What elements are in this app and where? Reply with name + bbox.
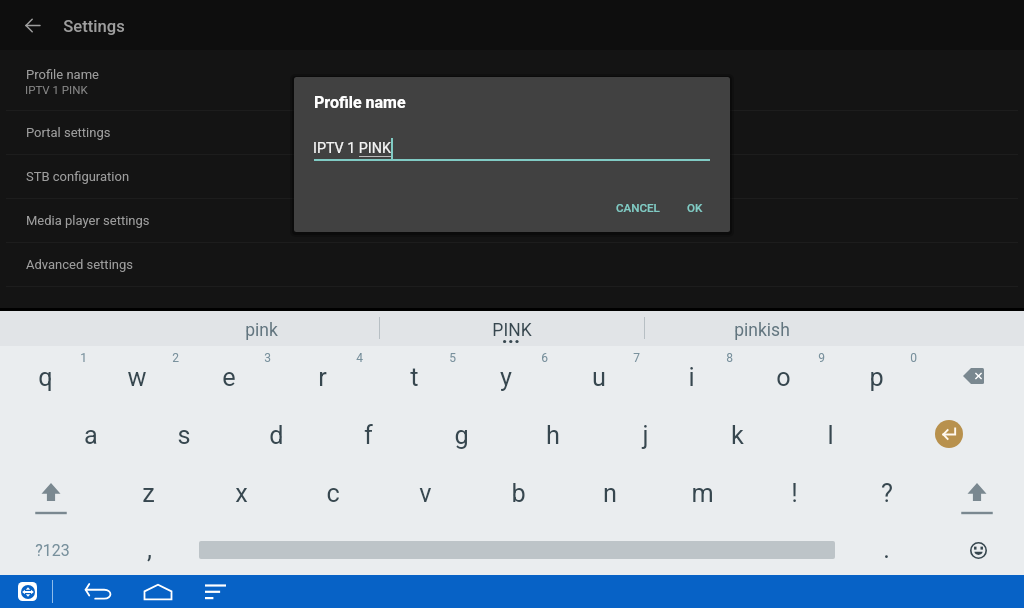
button[interactable]: [380, 310, 644, 346]
staticText: 6: [541, 351, 548, 365]
staticText: OK: [687, 201, 703, 215]
staticText: i: [688, 363, 695, 393]
button[interactable]: Back: [75, 575, 121, 608]
staticText: v: [419, 479, 432, 509]
button[interactable]: k: [691, 408, 783, 465]
staticText: !: [791, 479, 798, 509]
button[interactable]: c: [287, 466, 379, 523]
staticText: s: [177, 421, 191, 451]
button[interactable]: i: [645, 350, 737, 407]
button[interactable]: Recent apps: [190, 575, 240, 608]
staticText: k: [731, 421, 744, 451]
button[interactable]: [0, 310, 379, 346]
staticText: x: [235, 479, 248, 509]
staticText: Portal settings: [26, 125, 111, 140]
staticText: pink: [245, 320, 278, 341]
staticText: IPTV 1 PINK: [313, 140, 391, 157]
staticText: r: [318, 363, 327, 393]
button[interactable]: w: [91, 350, 183, 407]
button[interactable]: e: [183, 350, 275, 407]
button[interactable]: [0, 198, 1024, 242]
button[interactable]: Navigate up: [11, 0, 55, 50]
staticText: PINK: [492, 320, 532, 341]
staticText: u: [592, 363, 606, 393]
button[interactable]: Backspace: [927, 347, 1019, 404]
button[interactable]: v: [379, 466, 471, 523]
staticText: 3: [264, 351, 271, 365]
button[interactable]: r: [276, 350, 368, 407]
staticText: j: [642, 421, 649, 451]
staticText: 2: [172, 351, 179, 365]
button[interactable]: Emoji: [932, 522, 1024, 579]
button[interactable]: p: [830, 350, 922, 407]
staticText: ?: [881, 479, 893, 509]
button[interactable]: t: [368, 350, 460, 407]
button[interactable]: [0, 154, 1024, 198]
staticText: b: [511, 479, 526, 509]
staticText: ,: [147, 535, 152, 565]
button[interactable]: TeamViewer: [4, 575, 50, 608]
button[interactable]: o: [737, 350, 829, 407]
staticText: Media player settings: [26, 213, 150, 228]
staticText: ?123: [35, 541, 70, 560]
button[interactable]: Shift: [5, 466, 97, 523]
button[interactable]: l: [784, 408, 876, 465]
button[interactable]: Enter: [903, 405, 995, 462]
staticText: c: [326, 479, 340, 509]
staticText: Advanced settings: [26, 257, 133, 272]
button[interactable]: ?123: [5, 522, 97, 579]
button[interactable]: [0, 50, 1024, 110]
button[interactable]: [645, 310, 1024, 346]
staticText: q: [38, 363, 53, 393]
button[interactable]: Shift: [931, 466, 1023, 523]
staticText: h: [546, 421, 560, 451]
staticText: IPTV 1 PINK: [25, 83, 88, 96]
staticText: l: [827, 421, 834, 451]
button[interactable]: m: [656, 466, 748, 523]
staticText: 0: [910, 351, 917, 365]
button[interactable]: n: [564, 466, 656, 523]
staticText: g: [454, 421, 469, 451]
staticText: CANCEL: [616, 201, 660, 215]
button[interactable]: .: [840, 522, 932, 579]
staticText: n: [603, 479, 617, 509]
button[interactable]: s: [138, 408, 230, 465]
button[interactable]: d: [230, 408, 322, 465]
button[interactable]: x: [195, 466, 287, 523]
button[interactable]: a: [45, 408, 137, 465]
staticText: o: [776, 363, 791, 393]
button[interactable]: [0, 110, 1024, 154]
staticText: e: [222, 363, 236, 393]
button[interactable]: z: [102, 466, 194, 523]
button[interactable]: ,: [103, 522, 195, 579]
button[interactable]: u: [553, 350, 645, 407]
button[interactable]: [0, 242, 1024, 286]
button[interactable]: y: [460, 350, 552, 407]
button[interactable]: g: [415, 408, 507, 465]
staticText: pinkish: [734, 320, 790, 341]
staticText: Settings: [63, 17, 125, 36]
staticText: 7: [633, 351, 640, 365]
button[interactable]: OK: [672, 192, 718, 224]
staticText: 5: [449, 351, 456, 365]
button[interactable]: j: [599, 408, 691, 465]
staticText: 9: [818, 351, 825, 365]
button[interactable]: CANCEL: [601, 192, 675, 224]
button[interactable]: q: [0, 350, 91, 407]
button[interactable]: !: [748, 466, 840, 523]
staticText: STB configuration: [26, 169, 130, 184]
staticText: Profile name: [314, 93, 406, 112]
staticText: .: [883, 535, 890, 565]
button[interactable]: b: [472, 466, 564, 523]
staticText: p: [869, 363, 884, 393]
staticText: Profile name: [26, 67, 99, 82]
button[interactable]: h: [507, 408, 599, 465]
button[interactable]: Home: [133, 575, 183, 608]
staticText: y: [500, 363, 512, 393]
button[interactable]: f: [322, 408, 414, 465]
staticText: t: [410, 363, 419, 393]
staticText: w: [127, 363, 147, 393]
staticText: 4: [356, 351, 363, 365]
button[interactable]: ?: [841, 466, 933, 523]
